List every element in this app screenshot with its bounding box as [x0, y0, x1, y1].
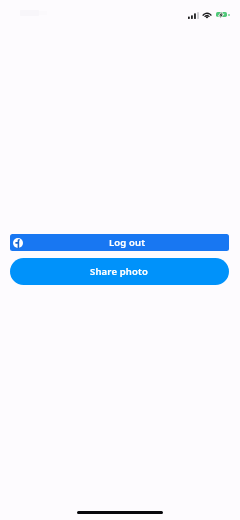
- other: Wi-Fi: [202, 11, 212, 18]
- button[interactable]: Facebook: [10, 234, 229, 251]
- other: Battery charging: [216, 12, 227, 18]
- other: Cellular signal: [188, 12, 199, 19]
- other: Facebook: [13, 238, 23, 248]
- staticText: Log out: [109, 236, 146, 249]
- button[interactable]: Share photo: [10, 258, 229, 285]
- staticText: Share photo: [90, 265, 149, 278]
